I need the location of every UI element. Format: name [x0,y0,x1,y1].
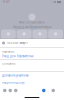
button[interactable]: Photo [7,86,13,95]
staticText: Уход для беременных [2,54,33,58]
button[interactable]: Send [41,86,46,95]
button[interactable]: Gallery [17,29,32,38]
button[interactable]: Camera [1,29,16,38]
staticText: Добавить участника [2,74,28,77]
staticText: Уход для беременных [12,24,51,29]
staticText: Название [2,50,14,53]
button[interactable]: Добавить участника [0,72,64,79]
button[interactable]: Menu [50,86,56,95]
staticText: Имя пользователя [19,21,45,24]
button[interactable]: Emoji [13,86,18,95]
button[interactable]: Личный аккаунт [0,39,64,47]
staticText: Личный аккаунт [6,41,27,45]
button[interactable]: Files [32,29,47,38]
button[interactable]: Настроить доступ [0,79,64,86]
staticText: 9:41 [3,0,10,4]
staticText: Настроить доступ [2,81,25,84]
button[interactable]: More [48,29,63,38]
button[interactable]: Attach [2,86,7,95]
staticText: Описание [2,62,15,65]
